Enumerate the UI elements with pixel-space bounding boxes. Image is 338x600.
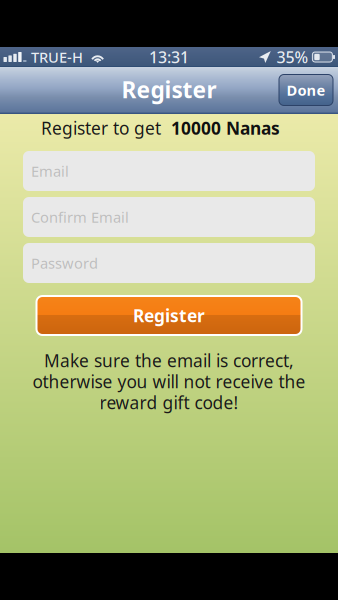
button[interactable]: Done — [279, 74, 333, 105]
staticText: Make sure the email is correct, — [44, 349, 294, 372]
staticText: Done — [286, 80, 325, 100]
staticText: 10000 Nanas — [171, 116, 280, 139]
button[interactable]: Register — [35, 295, 302, 336]
staticText: Password — [31, 253, 98, 273]
staticText: Register to get — [41, 116, 161, 139]
staticText: reward gift code! — [99, 391, 238, 414]
staticText: Register — [133, 304, 205, 327]
staticText: Confirm Email — [31, 207, 129, 227]
staticText: TRUE-H — [31, 47, 83, 67]
staticText: otherwise you will not receive the — [32, 370, 305, 393]
staticText: Register — [121, 74, 216, 104]
staticText: 13:31 — [149, 46, 189, 68]
staticText: 35% — [276, 46, 308, 68]
staticText: Email — [31, 161, 69, 181]
